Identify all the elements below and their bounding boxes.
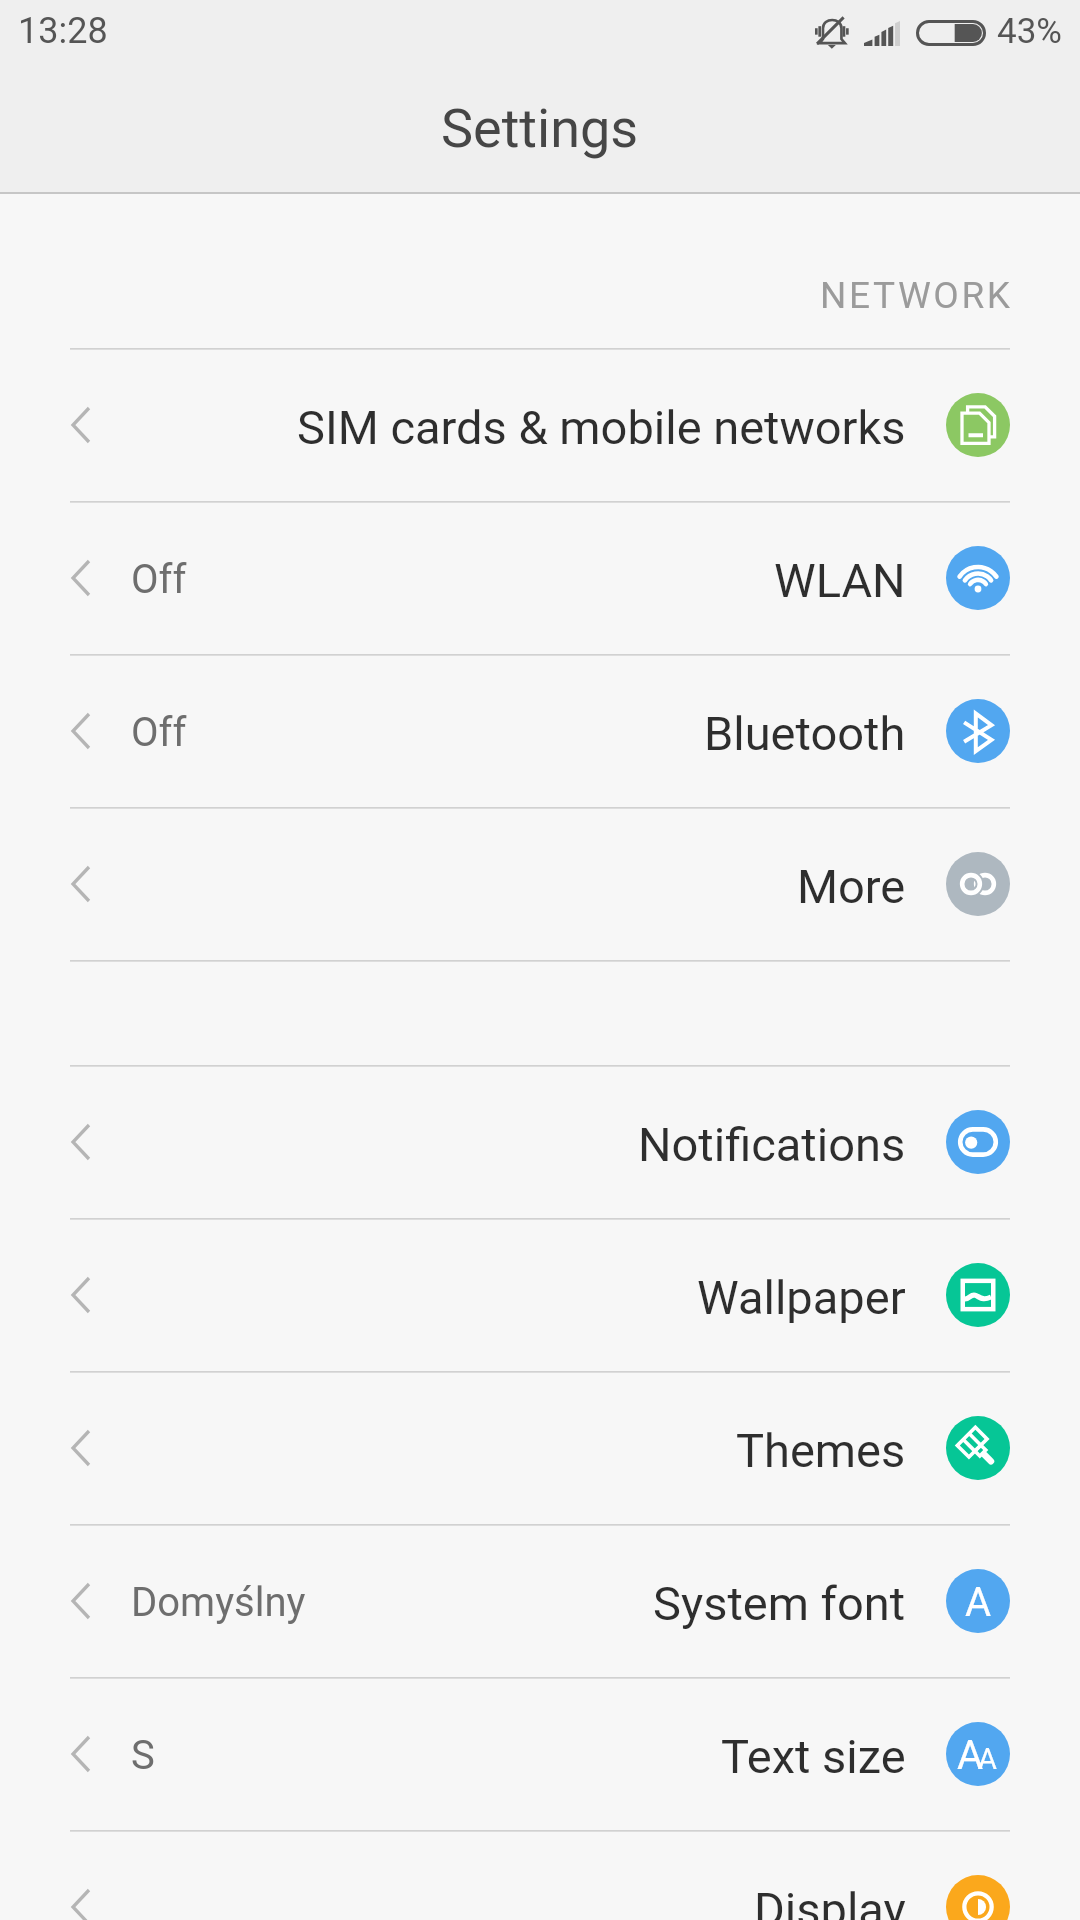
button[interactable]: Wallpaper	[0, 1219, 1080, 1370]
button[interactable]: Display	[0, 1831, 1080, 1920]
staticText: S	[131, 1732, 155, 1779]
staticText: 43%	[997, 11, 1062, 52]
button[interactable]: Notifications	[0, 1066, 1080, 1217]
staticText: Domyślny	[131, 1579, 306, 1626]
button[interactable]: Off	[0, 502, 1080, 653]
staticText: 13:28	[18, 10, 108, 52]
staticText: A	[957, 1732, 984, 1779]
staticText: A	[978, 1742, 997, 1776]
staticText: Display	[754, 1882, 906, 1920]
button[interactable]: SIM cards & mobile networks	[0, 349, 1080, 500]
staticText: Themes	[736, 1423, 906, 1478]
staticText: NETWORK	[820, 274, 1013, 317]
staticText: WLAN	[774, 553, 906, 608]
button[interactable]: More	[0, 808, 1080, 959]
button[interactable]: Themes	[0, 1372, 1080, 1523]
button[interactable]: Off	[0, 655, 1080, 806]
staticText: Text size	[721, 1729, 906, 1784]
staticText: Wallpaper	[697, 1270, 906, 1325]
staticText: A	[965, 1579, 992, 1626]
staticText: More	[797, 859, 906, 914]
staticText: Settings	[441, 97, 639, 160]
staticText: Off	[131, 709, 187, 756]
staticText: SIM cards & mobile networks	[297, 400, 906, 455]
staticText: Bluetooth	[704, 706, 906, 761]
staticText: Notifications	[638, 1117, 906, 1172]
button[interactable]: S	[0, 1678, 1080, 1829]
staticText: System font	[653, 1576, 906, 1631]
button[interactable]: Domyślny	[0, 1525, 1080, 1676]
staticText: Off	[131, 556, 187, 603]
